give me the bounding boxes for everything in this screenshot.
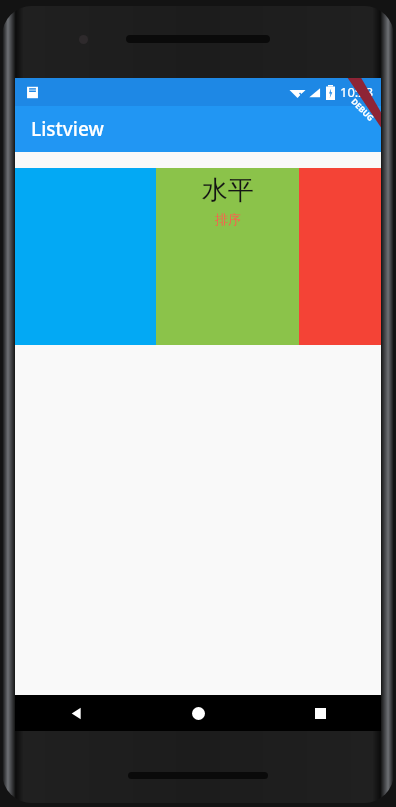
button[interactable]: Recents (259, 695, 381, 731)
button[interactable]: Back (15, 695, 137, 731)
staticText: Listview (31, 116, 104, 142)
button[interactable]: Home (137, 695, 259, 731)
staticText: 10:23 (340, 83, 374, 101)
staticText: 水平 (202, 174, 254, 207)
staticText: 排序 (215, 211, 241, 227)
staticText: DEBUG (349, 96, 377, 123)
button[interactable]: 水平 (156, 168, 299, 345)
button[interactable]: Listview (15, 106, 381, 152)
